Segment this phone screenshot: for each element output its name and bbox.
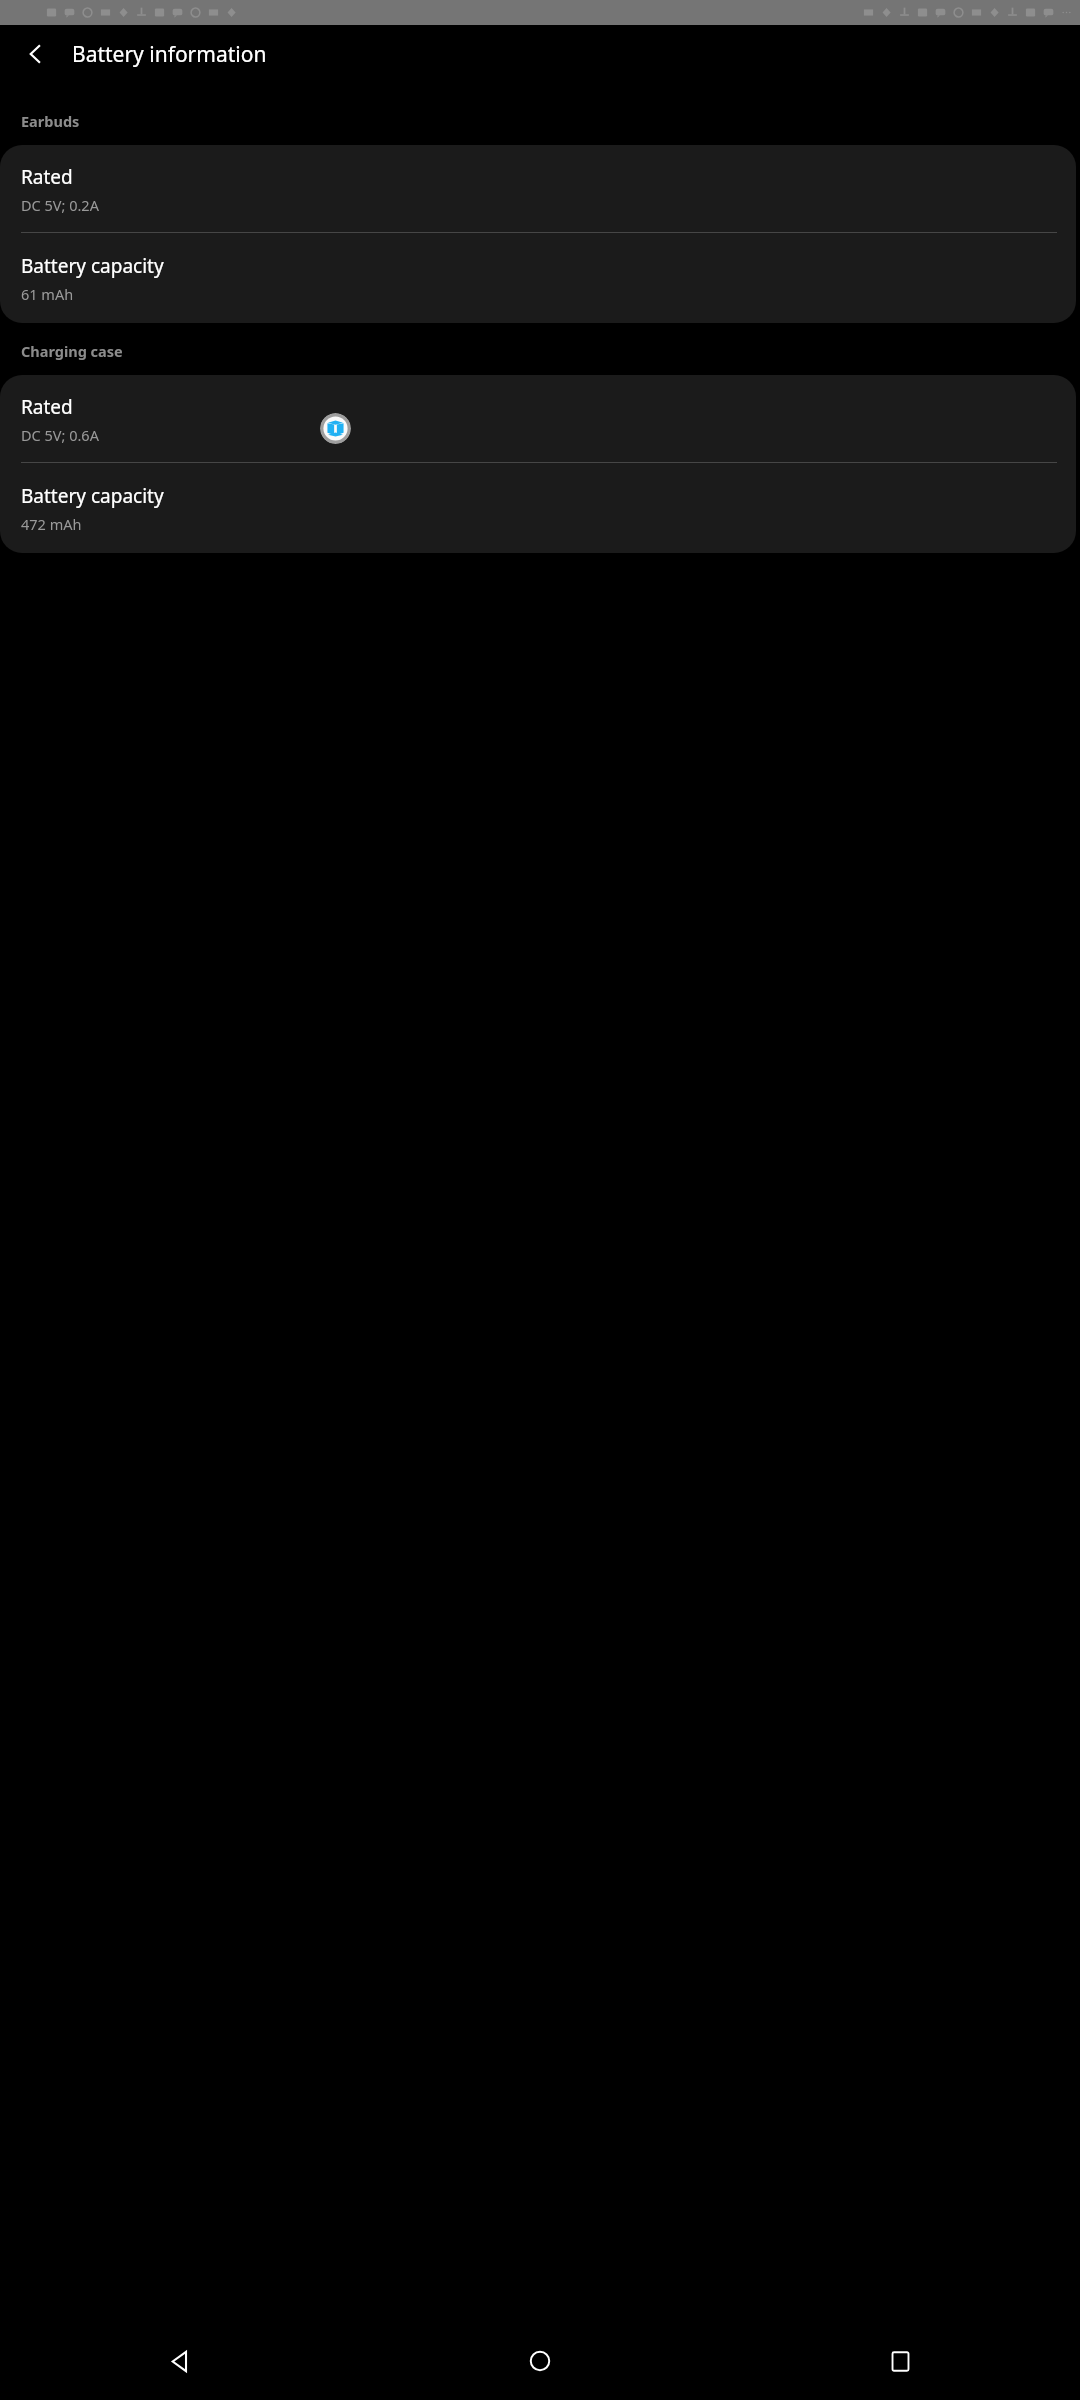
button[interactable]: Rated [0, 389, 1076, 448]
button[interactable]: Battery capacity [0, 478, 1076, 537]
staticText: 61 mAh [21, 284, 74, 304]
button[interactable]: Back [12, 30, 60, 78]
button[interactable]: Home [360, 2322, 720, 2400]
staticText: DC 5V; 0.6A [21, 425, 99, 445]
staticText: Earbuds [21, 111, 80, 131]
staticText: Charging case [21, 341, 123, 361]
staticText: DC 5V; 0.2A [21, 195, 99, 215]
button[interactable]: Recent apps [720, 2322, 1080, 2400]
staticText: Rated [21, 164, 73, 190]
staticText: Battery capacity [21, 253, 164, 279]
staticText: 472 mAh [21, 514, 82, 534]
button[interactable]: Open overlay app [320, 413, 351, 444]
button[interactable]: Battery capacity [0, 248, 1076, 307]
staticText: Battery information [72, 40, 267, 69]
button[interactable]: Rated [0, 159, 1076, 218]
staticText: Rated [21, 394, 73, 420]
button[interactable]: Back [0, 2322, 360, 2400]
staticText: Battery capacity [21, 483, 164, 509]
